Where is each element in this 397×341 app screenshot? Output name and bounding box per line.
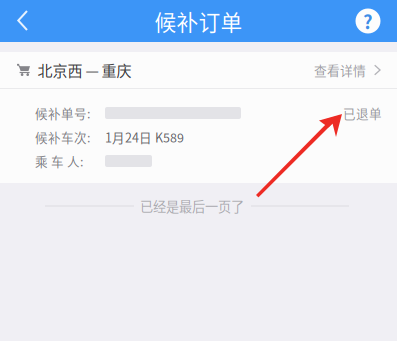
staticText: 候补订单 xyxy=(154,5,242,37)
button[interactable]: 北京西 — 重庆 xyxy=(0,52,397,88)
staticText: 查看详情 xyxy=(314,61,366,79)
staticText: 北京西 — 重庆 xyxy=(37,59,131,81)
staticText: ? xyxy=(363,7,373,34)
staticText: 乘 车 人: xyxy=(35,152,83,170)
staticText: 已经是最后一页了 xyxy=(140,196,244,215)
staticText: 已退单 xyxy=(343,104,382,122)
button[interactable]: Help xyxy=(339,0,397,42)
staticText: 候补车次: xyxy=(35,128,90,146)
button[interactable]: Back xyxy=(0,0,46,42)
staticText: 候补单号: xyxy=(35,104,90,122)
staticText: 1月24日 K589 xyxy=(105,128,184,146)
